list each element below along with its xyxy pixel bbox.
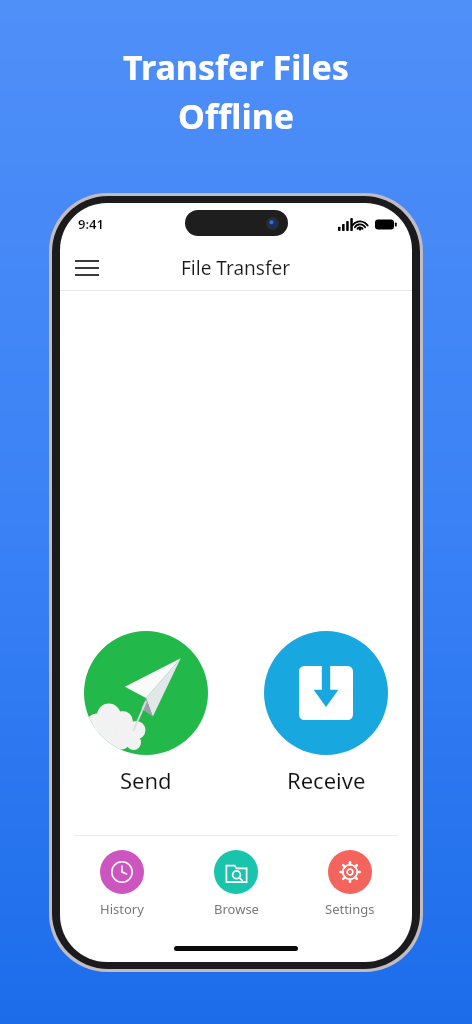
staticText: Transfer Files xyxy=(123,44,349,90)
staticText: Receive xyxy=(287,765,366,795)
staticText: 9:41 xyxy=(78,215,104,233)
staticText: Settings xyxy=(325,900,375,918)
button[interactable]: Settings xyxy=(302,850,398,918)
button[interactable]: Send xyxy=(84,631,208,795)
button[interactable]: Browse xyxy=(188,850,284,918)
staticText: Offline xyxy=(178,93,295,139)
staticText: File Transfer xyxy=(181,255,291,281)
button[interactable]: History xyxy=(74,850,170,918)
staticText: History xyxy=(100,900,144,918)
staticText: Browse xyxy=(214,900,259,918)
button[interactable]: Receive xyxy=(264,631,388,795)
staticText: Send xyxy=(120,765,172,795)
button[interactable]: Menu xyxy=(66,247,108,289)
